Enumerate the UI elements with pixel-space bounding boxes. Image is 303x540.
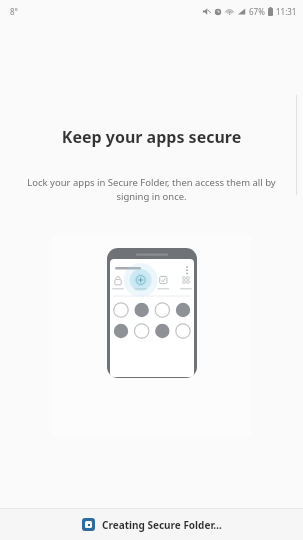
- staticText: Lock your apps in Secure Folder, then ac…: [12, 176, 291, 203]
- staticText: Keep your apps secure: [0, 126, 303, 148]
- staticText: 67%: [249, 6, 265, 17]
- button[interactable]: Secure Folder: [0, 509, 303, 540]
- staticText: Creating Secure Folder…: [102, 518, 222, 532]
- other: Secure Folder: [82, 518, 95, 531]
- staticText: 11:31: [276, 6, 297, 17]
- staticText: 8°: [10, 6, 18, 17]
